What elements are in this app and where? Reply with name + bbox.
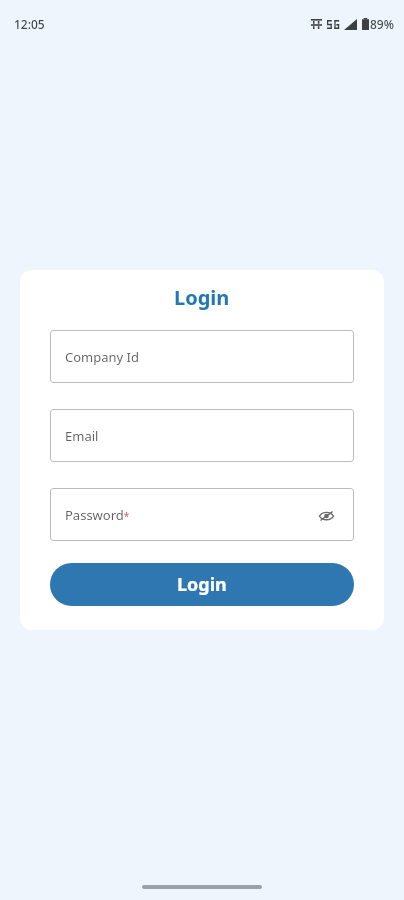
button[interactable]: Company Id (50, 330, 354, 383)
staticText: Login (177, 572, 227, 597)
button[interactable]: Login (50, 563, 354, 606)
button[interactable]: Password* (50, 488, 354, 541)
staticText: 12:05 (14, 16, 45, 32)
staticText: 89% (370, 16, 394, 32)
staticText: Login (174, 284, 230, 311)
staticText: Email (65, 427, 339, 445)
button[interactable]: Show password (313, 502, 339, 528)
staticText: Password* (65, 506, 313, 524)
staticText: Company Id (65, 348, 339, 366)
button[interactable]: Email (50, 409, 354, 462)
